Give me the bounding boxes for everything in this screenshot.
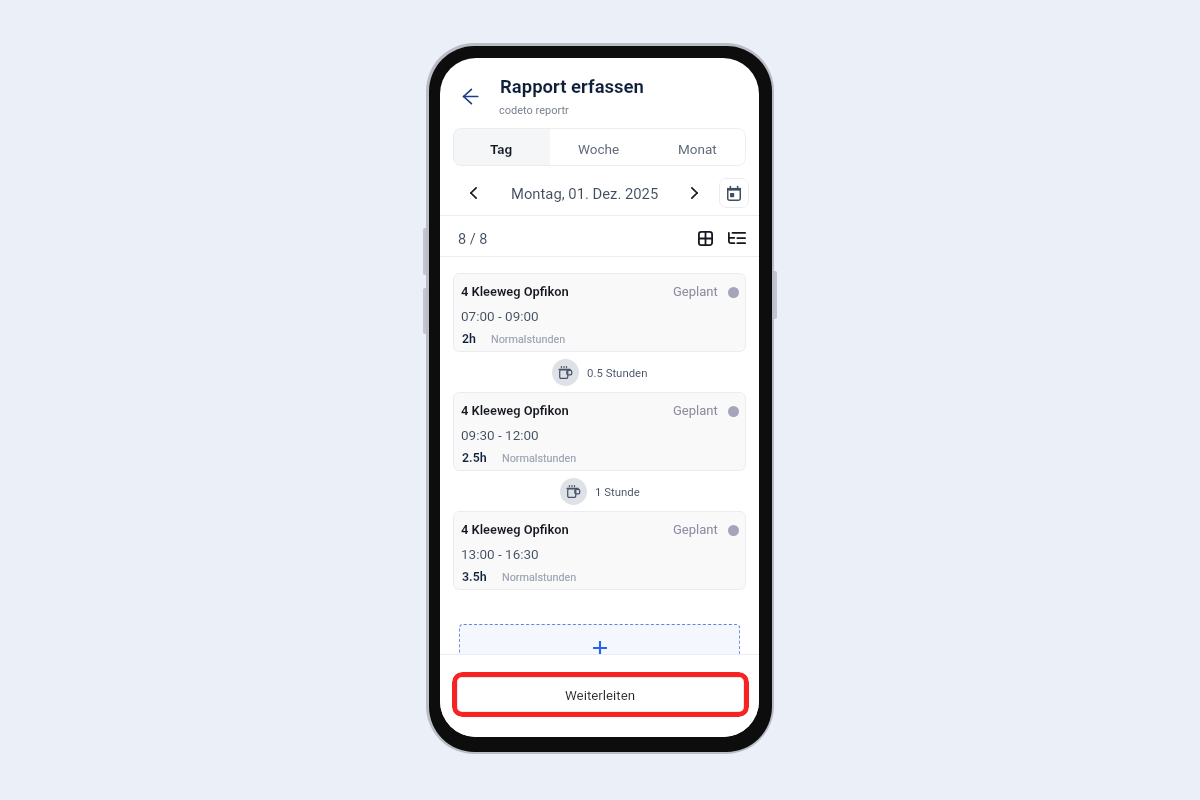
staticText: 4 Kleeweg Opfikon (461, 284, 569, 299)
staticText: 4 Kleeweg Opfikon (461, 403, 569, 418)
staticText: 0.5 Stunden (587, 366, 648, 379)
button[interactable]: Add entry (459, 624, 740, 672)
staticText: Normalstunden (502, 571, 577, 584)
staticText: Rapport erfassen (500, 76, 644, 98)
staticText: 8 / 8 (458, 231, 488, 248)
button[interactable]: Back (455, 81, 485, 111)
button[interactable]: Previous day (458, 178, 489, 208)
button[interactable]: Pick date (719, 178, 749, 208)
staticText: 2h (462, 332, 476, 346)
staticText: Normalstunden (491, 333, 566, 346)
staticText: 1 Stunde (595, 485, 640, 498)
staticText: 2.5h (462, 451, 487, 465)
staticText: 4 Kleeweg Opfikon (461, 522, 569, 537)
button[interactable]: Tag (453, 128, 550, 166)
staticText: 09:30 - 12:00 (461, 427, 539, 443)
button[interactable]: 4 Kleeweg Opfikon (453, 392, 746, 471)
button[interactable]: Woche (550, 128, 648, 166)
staticText: Geplant (673, 522, 718, 537)
staticText: Monat (678, 141, 717, 157)
staticText: Geplant (673, 284, 718, 299)
staticText: 07:00 - 09:00 (461, 308, 539, 324)
button[interactable]: Monat (648, 128, 746, 166)
staticText: Montag, 01. Dez. 2025 (511, 185, 659, 202)
staticText: Woche (578, 141, 620, 157)
staticText: Weiterleiten (565, 688, 636, 704)
button[interactable]: 4 Kleeweg Opfikon (453, 273, 746, 352)
staticText: Normalstunden (502, 452, 577, 465)
staticText: Geplant (673, 403, 718, 418)
button[interactable]: Weiterleiten (452, 672, 749, 717)
button[interactable]: Grid view (693, 226, 717, 250)
button[interactable]: Next day (679, 178, 710, 208)
staticText: 13:00 - 16:30 (461, 546, 539, 562)
staticText: 3.5h (462, 570, 487, 584)
staticText: codeto reportr (499, 104, 569, 117)
staticText: Tag (490, 141, 513, 157)
button[interactable]: 4 Kleeweg Opfikon (453, 511, 746, 590)
button[interactable]: List view (725, 226, 749, 250)
